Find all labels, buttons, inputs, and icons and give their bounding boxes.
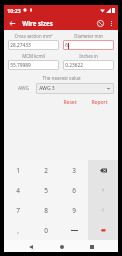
button[interactable]: 1 xyxy=(4,160,32,180)
button[interactable]: 6 xyxy=(60,180,88,200)
staticText: 0.23622 xyxy=(65,62,83,69)
button[interactable]: 5 xyxy=(32,180,60,200)
staticText: 28.27433 xyxy=(10,42,31,49)
button[interactable]: Space xyxy=(60,220,88,240)
button[interactable]: 6 xyxy=(63,40,114,50)
button[interactable]: Backspace xyxy=(88,160,118,180)
staticText: 5 xyxy=(44,186,48,195)
button[interactable]: Report xyxy=(88,97,111,108)
button[interactable]: 7 xyxy=(4,200,32,220)
button[interactable]: AWG 3 xyxy=(36,83,114,94)
button[interactable]: , xyxy=(4,220,32,240)
button[interactable]: Help xyxy=(94,17,106,29)
button[interactable]: More options xyxy=(106,18,116,28)
staticText: 1 xyxy=(16,166,20,175)
staticText: The nearest value xyxy=(42,75,81,81)
staticText: 2 xyxy=(44,166,48,175)
staticText: Cross section mm² xyxy=(14,33,53,39)
staticText: MCM kcmil xyxy=(22,53,45,59)
staticText: 10:23 xyxy=(7,7,21,14)
button[interactable]: 2 xyxy=(32,160,60,180)
staticText: AWG xyxy=(18,85,29,92)
button[interactable]: 55.79989 xyxy=(8,60,59,70)
staticText: 0 xyxy=(44,226,48,235)
button[interactable]: 8 xyxy=(32,200,60,220)
staticText: 3 xyxy=(72,166,76,175)
button[interactable]: 28.27433 xyxy=(8,40,59,50)
staticText: Inches in xyxy=(79,53,98,59)
button[interactable]: Back xyxy=(6,17,18,29)
staticText: 8 xyxy=(44,206,48,215)
staticText: AWG 3 xyxy=(39,85,55,92)
staticText: Wire sizes xyxy=(22,19,53,27)
button[interactable]: 0 xyxy=(32,220,60,240)
button[interactable]: 0.23622 xyxy=(63,60,114,70)
staticText: Reset xyxy=(63,99,77,106)
button[interactable]: 9 xyxy=(60,200,88,220)
button[interactable]: Recents xyxy=(87,242,96,251)
staticText: Report xyxy=(91,99,108,106)
staticText: 4 xyxy=(16,186,20,195)
staticText: 6 xyxy=(65,42,68,49)
button[interactable]: Reset xyxy=(60,97,80,108)
button[interactable]: Home xyxy=(57,242,66,251)
staticText: 7 xyxy=(16,206,20,215)
staticText: 6 xyxy=(72,186,76,195)
staticText: 55.79989 xyxy=(10,62,31,69)
button[interactable]: Back xyxy=(26,242,35,251)
staticText: , xyxy=(17,226,19,235)
button[interactable]: Enter xyxy=(88,220,118,240)
staticText: Diameter mm xyxy=(74,33,103,39)
button[interactable]: 3 xyxy=(60,160,88,180)
button[interactable]: 4 xyxy=(4,180,32,200)
staticText: 9 xyxy=(72,206,76,215)
